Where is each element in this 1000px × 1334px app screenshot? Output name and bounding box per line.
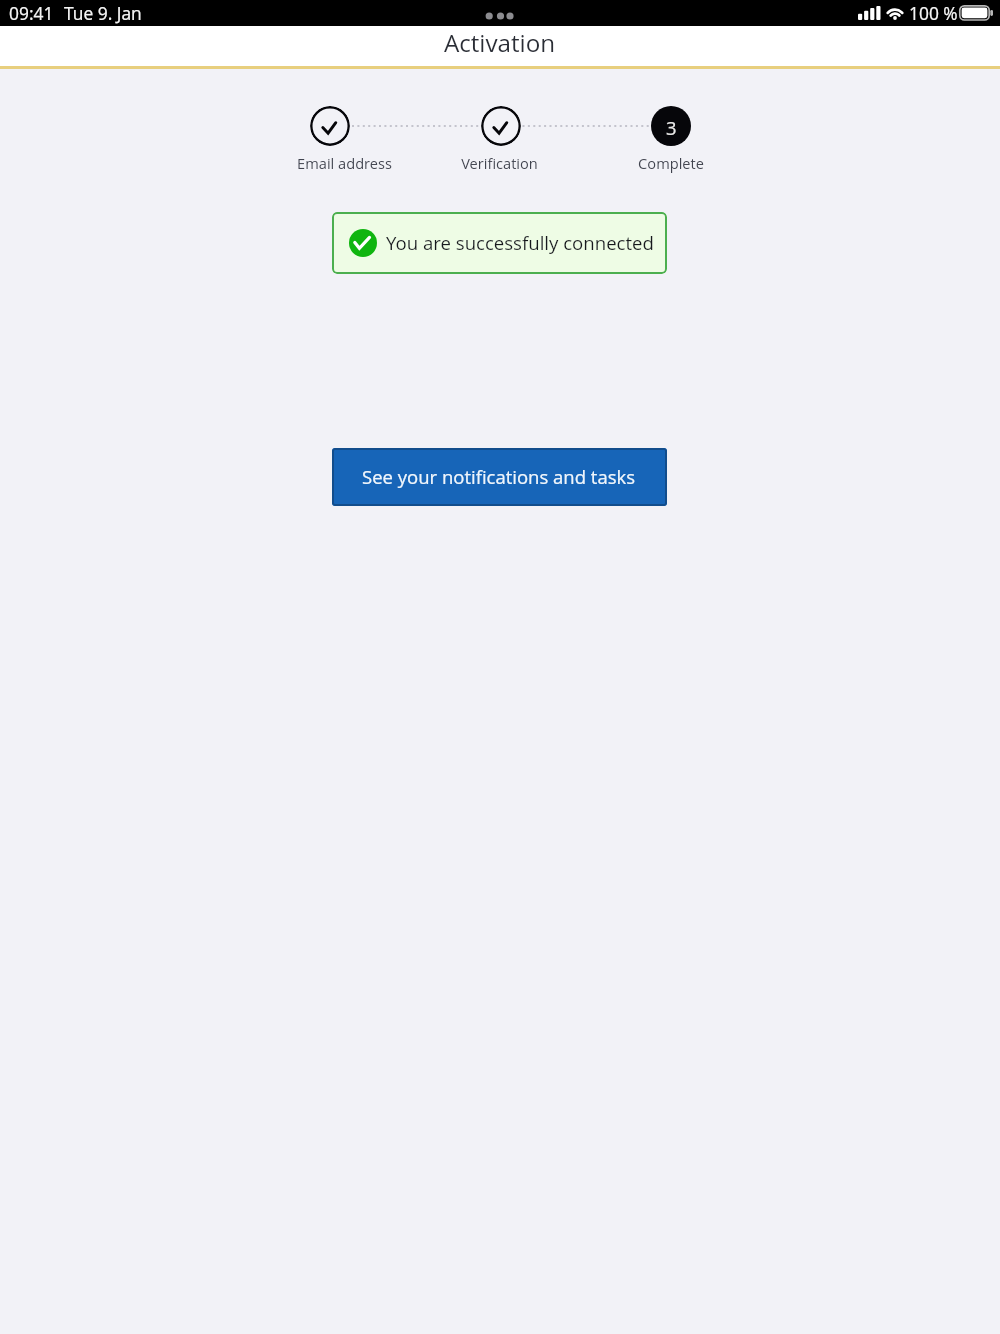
button[interactable]: Verification step, completed (481, 106, 521, 146)
button[interactable]: Step 3, Complete (651, 106, 691, 146)
button[interactable]: You are successfully connected (332, 212, 667, 274)
staticText: Email address (297, 153, 392, 173)
button[interactable]: See your notifications and tasks (332, 448, 667, 506)
staticText: Activation (444, 26, 556, 59)
staticText: 09:41 (9, 1, 54, 25)
staticText: See your notifications and tasks (362, 464, 636, 489)
staticText: 3 (666, 115, 677, 140)
staticText: Tue 9. Jan (64, 1, 142, 25)
staticText: Verification (461, 153, 538, 173)
staticText: Complete (638, 153, 704, 173)
staticText: 100 % (909, 1, 958, 25)
button[interactable]: Email address step, completed (310, 106, 350, 146)
staticText: You are successfully connected (386, 230, 654, 255)
